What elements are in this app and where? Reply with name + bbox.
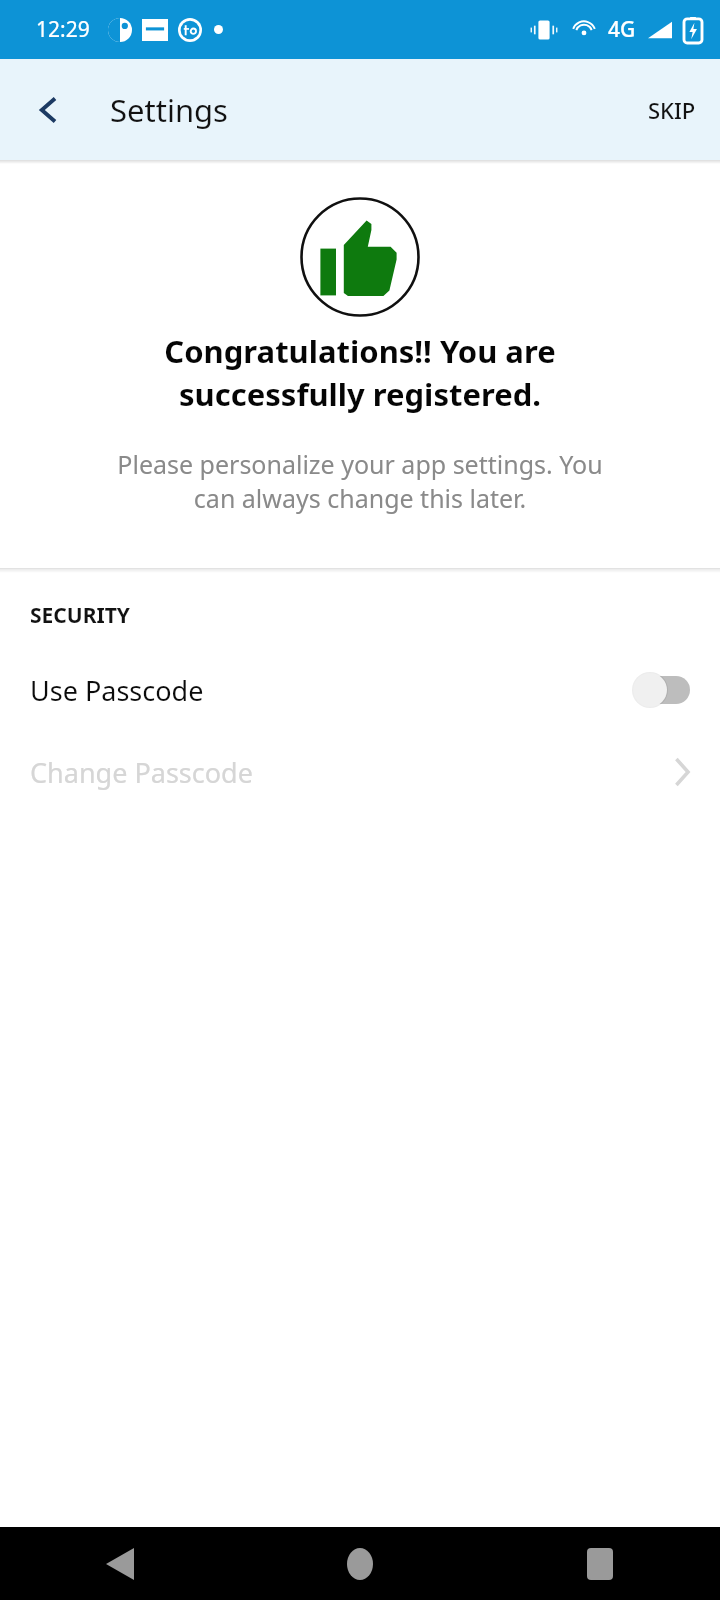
staticText: Change Passcode: [30, 754, 253, 791]
staticText: Congratulations!! You are successfully r…: [0, 330, 720, 415]
button[interactable]: Home: [240, 1527, 480, 1600]
staticText: SKIP: [648, 95, 696, 125]
staticText: Use Passcode: [30, 672, 204, 709]
button[interactable]: Change Passcode: [0, 740, 720, 804]
button[interactable]: Use Passcode: [0, 658, 720, 722]
staticText: Settings: [110, 89, 228, 131]
staticText: 4G: [608, 15, 636, 44]
button[interactable]: SKIP: [624, 77, 720, 143]
button[interactable]: Back: [18, 79, 80, 141]
button[interactable]: Recent apps: [480, 1527, 720, 1600]
staticText: 12:29: [36, 15, 90, 44]
staticText: Please personalize your app settings. Yo…: [0, 447, 720, 516]
button[interactable]: Back: [0, 1527, 240, 1600]
staticText: SECURITY: [30, 601, 130, 630]
